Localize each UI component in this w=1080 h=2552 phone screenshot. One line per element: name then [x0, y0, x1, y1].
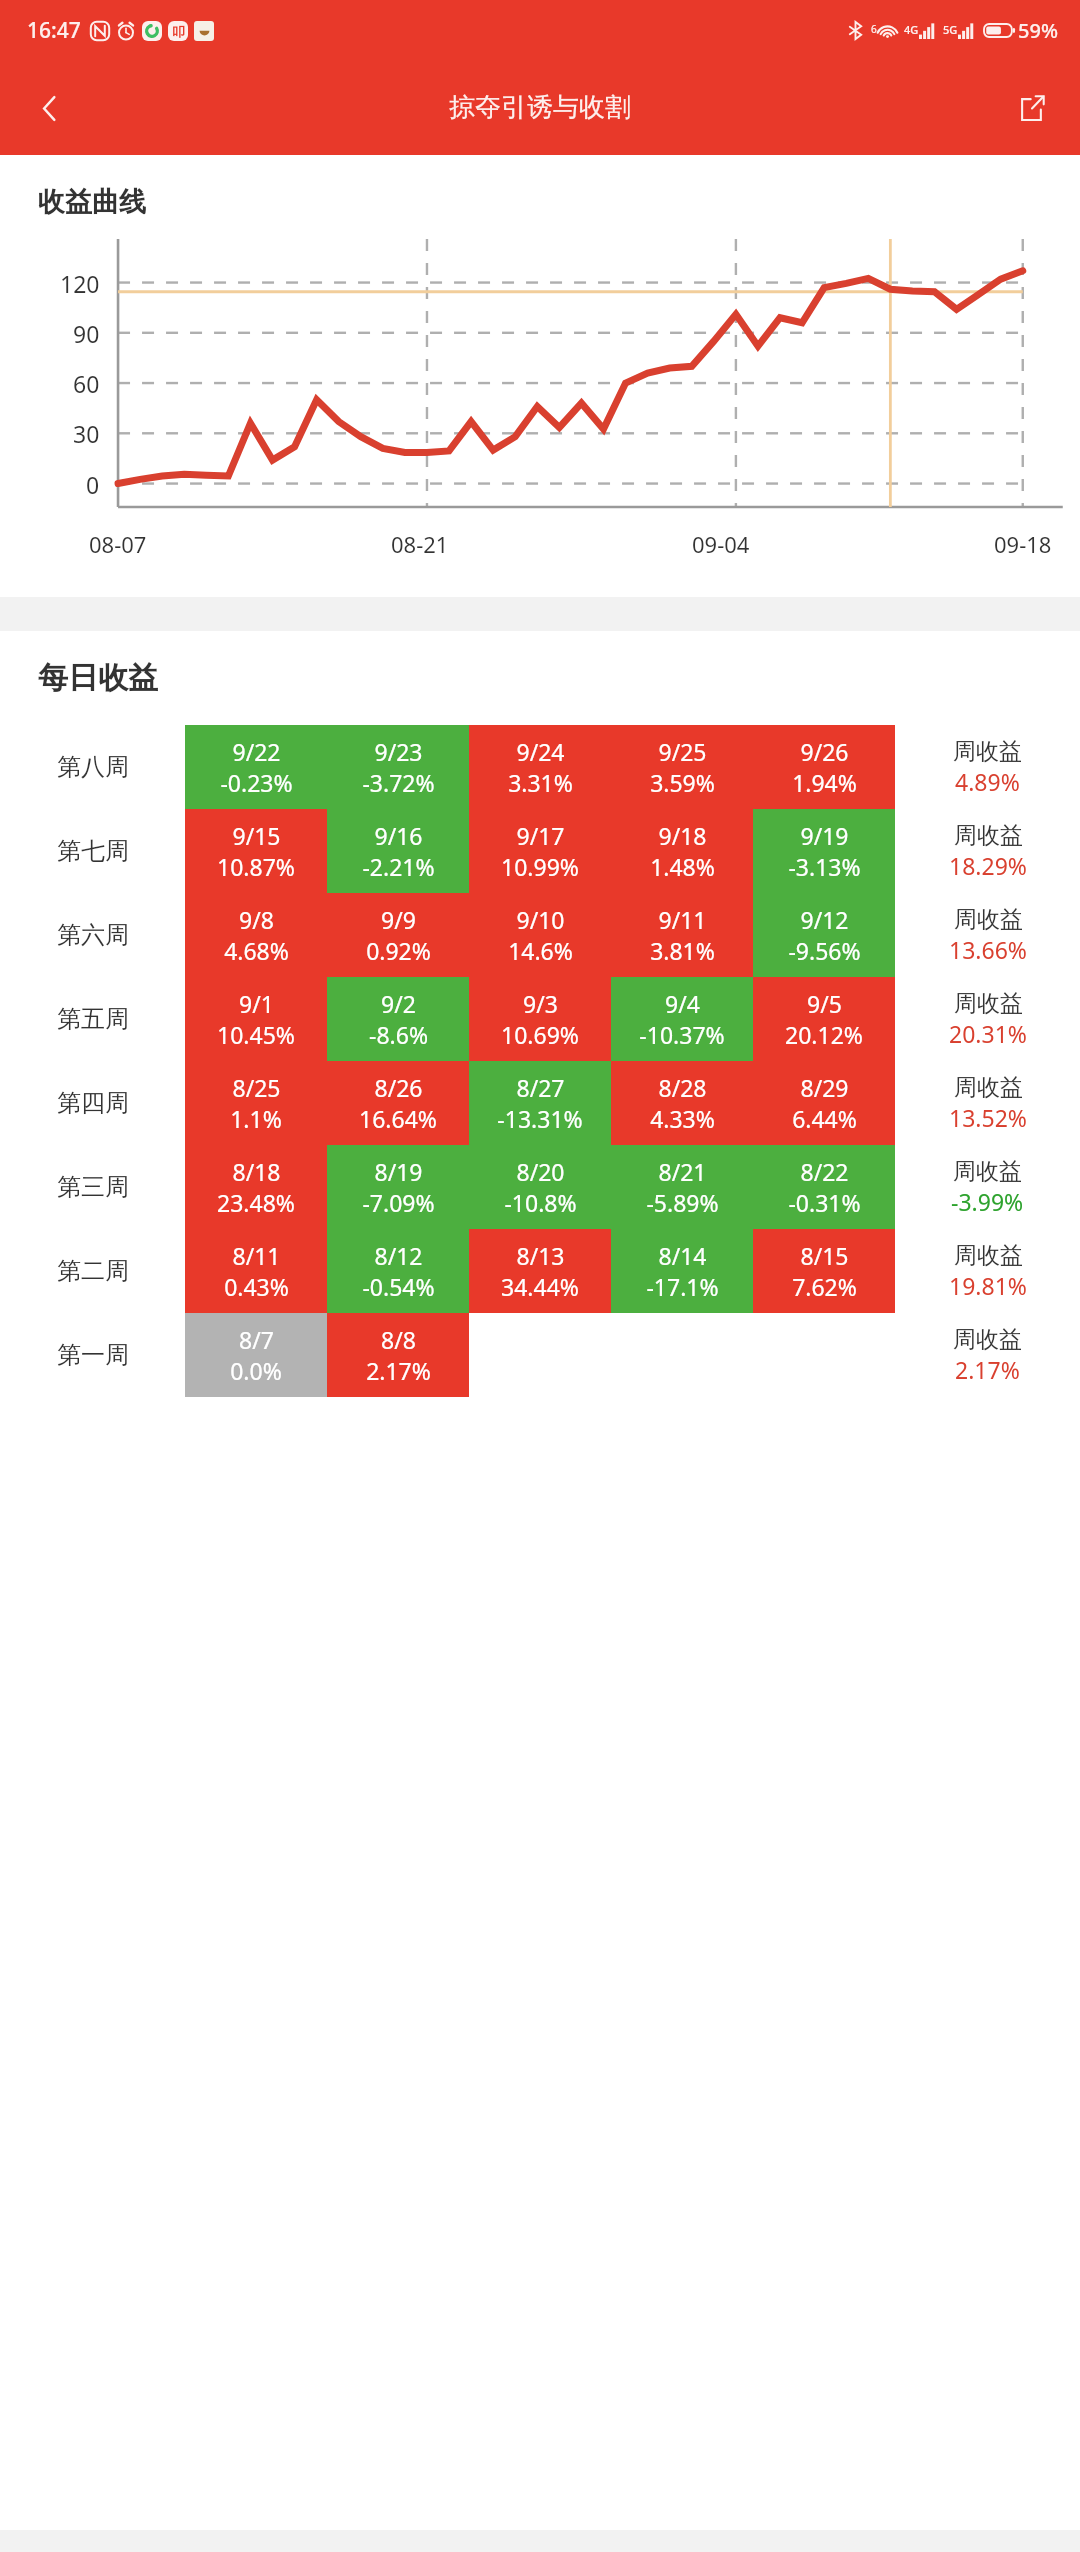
button[interactable]: 第二周 [0, 1229, 1080, 1313]
staticText: 120 [60, 268, 100, 299]
staticText: 8/8 [381, 1324, 416, 1355]
staticText: 8/20 [516, 1156, 565, 1187]
button[interactable]: 第八周 [0, 725, 1080, 809]
staticText: 9/5 [807, 988, 842, 1019]
staticText: 0.92% [366, 935, 431, 966]
staticText: 8/15 [800, 1240, 849, 1271]
staticText: 1.94% [792, 767, 857, 798]
staticText: 09-18 [994, 529, 1052, 559]
button[interactable]: 第四周 [0, 1061, 1080, 1145]
staticText: 9/24 [516, 736, 565, 767]
staticText: -8.6% [369, 1019, 428, 1050]
staticText: 第六周 [57, 920, 129, 950]
staticText: 13.66% [949, 934, 1027, 965]
staticText: 8/21 [658, 1156, 707, 1187]
staticText: 8/29 [800, 1072, 849, 1103]
staticText: -17.1% [646, 1271, 719, 1302]
staticText: 90 [73, 318, 100, 349]
staticText: 9/8 [239, 904, 274, 935]
staticText: 9/4 [665, 988, 700, 1019]
staticText: 8/28 [658, 1072, 707, 1103]
staticText: 7.62% [792, 1271, 857, 1302]
staticText: 5G [943, 22, 958, 37]
staticText: 3.81% [650, 935, 715, 966]
staticText: 0.0% [230, 1355, 282, 1386]
staticText: 3.59% [650, 767, 715, 798]
staticText: 6 [871, 22, 877, 36]
staticText: 9/1 [239, 988, 274, 1019]
staticText: 08-21 [391, 529, 449, 559]
staticText: 4.89% [955, 766, 1020, 797]
staticText: -10.8% [504, 1187, 577, 1218]
button[interactable]: 第五周 [0, 977, 1080, 1061]
staticText: 8/11 [232, 1240, 281, 1271]
button[interactable]: Share [1004, 80, 1060, 136]
staticText: 60 [73, 368, 100, 399]
staticText: 10.45% [217, 1019, 295, 1050]
staticText: 周收益 [953, 737, 1022, 766]
staticText: -0.23% [220, 767, 293, 798]
staticText: 8/26 [374, 1072, 423, 1103]
staticText: -0.31% [788, 1187, 861, 1218]
staticText: 59% [1018, 17, 1058, 44]
button[interactable]: 第一周 [0, 1313, 1080, 1397]
staticText: 1.48% [650, 851, 715, 882]
staticText: 9/25 [658, 736, 707, 767]
staticText: 8/7 [239, 1324, 274, 1355]
button[interactable]: Back [18, 77, 80, 139]
staticText: 10.87% [217, 851, 295, 882]
staticText: -13.31% [497, 1103, 583, 1134]
staticText: 09-04 [692, 529, 750, 559]
button[interactable]: 第七周 [0, 809, 1080, 893]
staticText: 9/19 [800, 820, 849, 851]
staticText: 9/23 [374, 736, 423, 767]
staticText: 6.44% [792, 1103, 857, 1134]
staticText: 第五周 [57, 1004, 129, 1034]
staticText: 9/26 [800, 736, 849, 767]
staticText: 8/27 [516, 1072, 565, 1103]
staticText: 8/18 [232, 1156, 281, 1187]
staticText: -10.37% [639, 1019, 725, 1050]
staticText: 9/16 [374, 820, 423, 851]
staticText: 08-07 [89, 529, 147, 559]
staticText: 8/25 [232, 1072, 281, 1103]
staticText: 23.48% [217, 1187, 295, 1218]
staticText: 第一周 [57, 1340, 129, 1370]
staticText: 8/13 [516, 1240, 565, 1271]
button[interactable]: 第三周 [0, 1145, 1080, 1229]
staticText: 10.99% [501, 851, 579, 882]
staticText: -3.13% [788, 851, 861, 882]
staticText: 9/10 [516, 904, 565, 935]
staticText: 周收益 [954, 1241, 1023, 1270]
staticText: 每日收益 [38, 659, 158, 697]
staticText: 掠夺引诱与收割 [449, 91, 631, 124]
staticText: -5.89% [646, 1187, 719, 1218]
staticText: 周收益 [954, 821, 1023, 850]
staticText: 16:47 [27, 16, 81, 45]
staticText: 1.1% [230, 1103, 282, 1134]
staticText: 9/17 [516, 820, 565, 851]
staticText: 8/22 [800, 1156, 849, 1187]
staticText: 20.12% [785, 1019, 863, 1050]
staticText: 周收益 [954, 989, 1023, 1018]
staticText: 叩 [172, 23, 185, 39]
staticText: 14.6% [508, 935, 573, 966]
staticText: 8/19 [374, 1156, 423, 1187]
staticText: 0 [86, 469, 100, 500]
staticText: 13.52% [949, 1102, 1027, 1133]
staticText: 第四周 [57, 1088, 129, 1118]
button[interactable]: 第六周 [0, 893, 1080, 977]
staticText: -9.56% [788, 935, 861, 966]
staticText: 4.68% [224, 935, 289, 966]
staticText: 9/3 [523, 988, 558, 1019]
staticText: 第八周 [57, 752, 129, 782]
staticText: 16.64% [359, 1103, 437, 1134]
staticText: 周收益 [953, 1325, 1022, 1354]
staticText: 9/15 [232, 820, 281, 851]
staticText: -3.99% [951, 1186, 1024, 1217]
staticText: 2.17% [366, 1355, 431, 1386]
staticText: -2.21% [362, 851, 435, 882]
staticText: 9/2 [381, 988, 416, 1019]
staticText: 8/14 [658, 1240, 707, 1271]
staticText: 3.31% [508, 767, 573, 798]
